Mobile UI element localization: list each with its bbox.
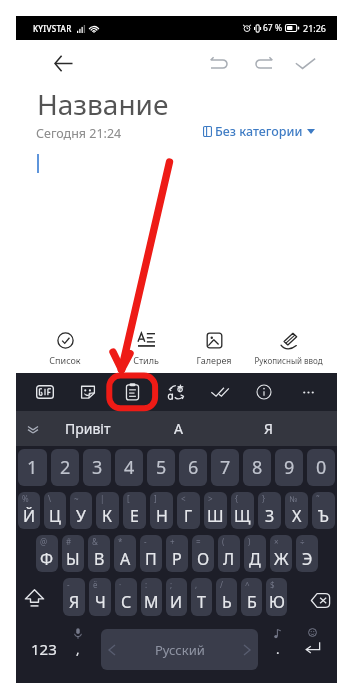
button[interactable]: ; <box>166 578 187 616</box>
button[interactable]: Hide suggestions <box>22 418 44 440</box>
button[interactable]: 3 <box>83 449 111 486</box>
staticText: , <box>195 579 198 590</box>
button[interactable]: ( <box>218 535 240 572</box>
button[interactable]: Translate <box>154 373 198 411</box>
button[interactable]: Info <box>242 373 286 411</box>
staticText: Русский <box>155 641 205 659</box>
staticText: П <box>145 548 157 570</box>
button[interactable]: / <box>216 578 237 616</box>
button[interactable]: = <box>192 535 214 572</box>
button[interactable]: ˜ <box>312 492 335 529</box>
staticText: Ч <box>95 591 106 613</box>
button[interactable]: + <box>166 535 188 572</box>
button[interactable]: Рукописный ввод <box>248 325 328 373</box>
button[interactable]: GIF <box>23 373 66 411</box>
staticText: Ы <box>66 548 80 570</box>
button[interactable]: 8 <box>243 449 271 486</box>
button[interactable]: ~ <box>70 492 92 529</box>
staticText: + <box>170 536 175 547</box>
button[interactable]: 2 <box>51 449 79 486</box>
button[interactable]: Стиль <box>126 325 166 373</box>
button[interactable]: А <box>133 411 223 446</box>
button[interactable]: 5 <box>147 449 175 486</box>
button[interactable]: Redo <box>247 47 280 80</box>
button[interactable]: \ <box>44 492 66 529</box>
staticText: : <box>145 579 148 590</box>
button[interactable]: · <box>115 578 137 616</box>
button[interactable]: - <box>140 535 162 572</box>
button[interactable]: Enter <box>294 619 330 683</box>
staticText: 7 <box>220 455 231 480</box>
button[interactable]: ё <box>89 578 111 616</box>
staticText: М <box>144 591 159 613</box>
button[interactable]: - <box>63 578 85 616</box>
staticText: - <box>144 536 147 547</box>
button[interactable]: № <box>285 492 308 529</box>
staticText: А <box>120 548 131 570</box>
button[interactable]: 9 <box>275 449 303 486</box>
staticText: 67 % <box>263 22 282 34</box>
button[interactable]: Backspace <box>289 575 337 619</box>
button[interactable]: Stickers <box>66 373 110 411</box>
button[interactable]: Shift <box>16 575 61 619</box>
button[interactable]: > <box>204 492 227 529</box>
staticText: , <box>76 640 80 658</box>
staticText: Д <box>249 548 261 570</box>
staticText: С <box>121 591 132 613</box>
button[interactable]: ] <box>150 492 173 529</box>
button[interactable]: [ <box>123 492 146 529</box>
button[interactable]: Я <box>223 411 313 446</box>
staticText: / <box>220 579 223 590</box>
button[interactable]: % <box>18 492 40 529</box>
staticText: Галерея <box>196 354 232 366</box>
staticText: К <box>102 505 113 527</box>
button[interactable]: : <box>141 578 162 616</box>
button[interactable]: ÷ <box>296 535 318 572</box>
button[interactable]: Без категории <box>203 121 315 141</box>
button[interactable]: $ <box>266 578 287 616</box>
button[interactable]: Undo <box>202 47 235 80</box>
button[interactable]: Clipboard <box>110 373 154 411</box>
button[interactable]: < <box>177 492 200 529</box>
staticText: [ <box>127 493 130 504</box>
button[interactable]: Spell check <box>198 373 242 411</box>
button[interactable]: # <box>62 535 84 572</box>
button[interactable]: Back <box>47 47 80 80</box>
button[interactable]: Список <box>43 325 87 373</box>
button[interactable]: 0 <box>307 449 335 486</box>
button[interactable]: 4 <box>115 449 143 486</box>
button[interactable]: , <box>191 578 212 616</box>
button[interactable]: × <box>270 535 292 572</box>
staticText: Т <box>197 591 206 613</box>
button[interactable]: More options <box>286 373 330 411</box>
staticText: ÷ <box>300 536 305 547</box>
button[interactable]: } <box>258 492 281 529</box>
staticText: ( <box>222 536 225 547</box>
button[interactable]: . <box>262 619 294 683</box>
staticText: . <box>276 640 280 658</box>
button[interactable]: Save <box>289 47 322 80</box>
button[interactable]: Русский <box>101 629 258 670</box>
button[interactable]: 6 <box>179 449 207 486</box>
button[interactable]: Галерея <box>190 325 238 373</box>
button[interactable]: @ <box>36 535 58 572</box>
button[interactable]: 123 <box>23 619 64 683</box>
staticText: 9 <box>284 455 295 480</box>
staticText: И <box>170 591 183 613</box>
staticText: 0 <box>316 455 327 480</box>
button[interactable]: { <box>231 492 254 529</box>
button[interactable]: * <box>114 535 136 572</box>
button[interactable]: ) <box>244 535 266 572</box>
staticText: > <box>208 493 213 504</box>
staticText: 6 <box>188 455 199 480</box>
staticText: Ш <box>207 505 224 527</box>
button[interactable]: ^ <box>241 578 262 616</box>
button[interactable]: & <box>88 535 110 572</box>
staticText: ё <box>93 579 98 590</box>
button[interactable]: Привіт <box>42 411 134 446</box>
staticText: ^ <box>245 579 250 590</box>
button[interactable]: 7 <box>211 449 239 486</box>
button[interactable]: 1 <box>18 449 47 486</box>
button[interactable]: Voice input <box>62 619 94 683</box>
button[interactable]: | <box>96 492 119 529</box>
